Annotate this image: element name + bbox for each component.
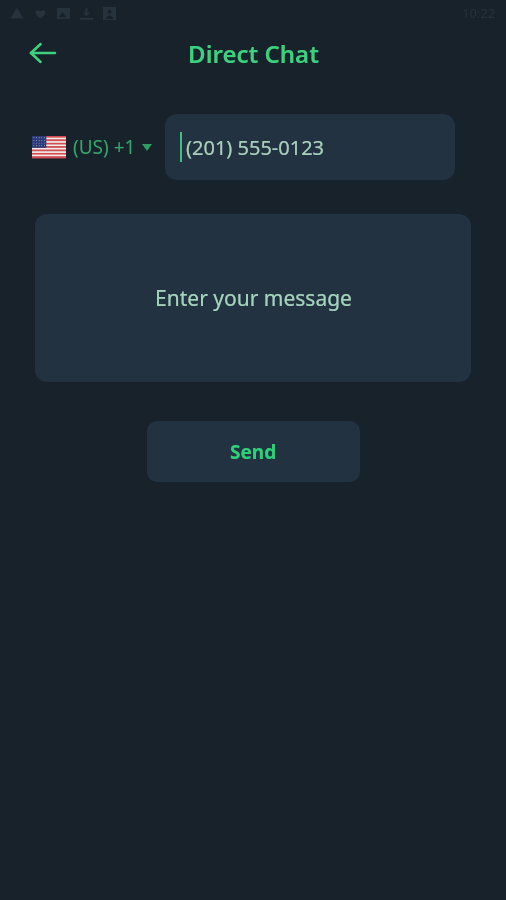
staticText: 10:22 — [462, 4, 496, 22]
staticText: Direct Chat — [188, 37, 319, 70]
staticText: Send — [230, 439, 277, 465]
staticText: Enter your message — [155, 284, 352, 313]
staticText: (201) 555-0123 — [186, 134, 325, 161]
button[interactable]: (201) 555-0123 — [165, 114, 455, 180]
button[interactable]: Back — [20, 30, 66, 76]
button[interactable]: Enter your message — [35, 214, 471, 382]
button[interactable]: Send — [147, 421, 360, 482]
staticText: (US) +1 — [73, 134, 136, 160]
button[interactable]: Select country code — [32, 134, 152, 160]
